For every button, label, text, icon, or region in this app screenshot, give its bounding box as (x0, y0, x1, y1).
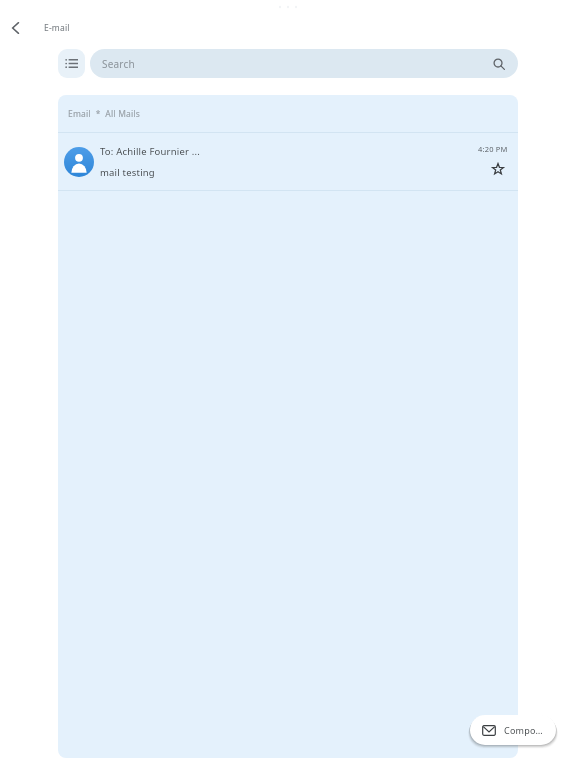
button[interactable]: To: Achille Fournier ... (58, 133, 518, 190)
staticText: Email * All Mails (68, 108, 141, 120)
staticText: mail testing (100, 166, 155, 179)
staticText: Search (102, 57, 135, 71)
button[interactable]: Search (90, 49, 518, 78)
button[interactable]: Star (488, 159, 508, 179)
staticText: To: Achille Fournier ... (100, 145, 201, 158)
button[interactable]: Compose (470, 715, 556, 745)
button[interactable]: Back (4, 16, 28, 40)
staticText: E-mail (44, 22, 70, 34)
staticText: Compose (504, 724, 544, 736)
button[interactable]: View options (58, 49, 85, 78)
button[interactable]: Search (488, 53, 510, 75)
staticText: 4:20 PM (478, 144, 508, 154)
